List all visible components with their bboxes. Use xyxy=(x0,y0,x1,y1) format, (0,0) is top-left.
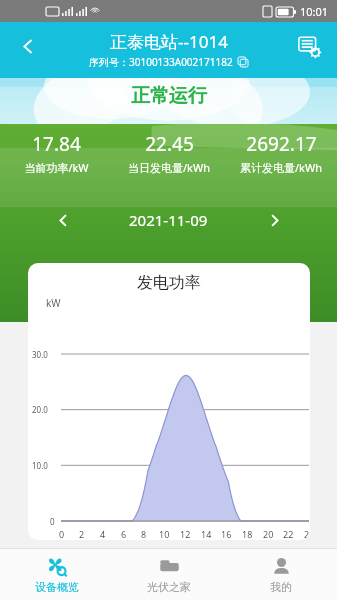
staticText: 0 xyxy=(59,528,65,540)
staticText: 序列号：30100133A002171182 xyxy=(89,55,233,69)
staticText: 8 xyxy=(141,528,147,540)
staticText: 2 xyxy=(79,528,85,540)
staticText: 12 xyxy=(180,528,191,540)
staticText: 2692.17 xyxy=(246,131,317,157)
staticText: 6 xyxy=(121,528,127,540)
staticText: 18 xyxy=(242,528,253,540)
button[interactable]: 光伏之家 xyxy=(113,549,225,600)
staticText: 22.45 xyxy=(145,131,194,157)
button[interactable]: Copy serial number xyxy=(237,56,249,68)
button[interactable]: 设备概览 xyxy=(0,549,113,600)
staticText: 当前功率/kW xyxy=(24,160,89,175)
staticText: 当日发电量/kWh xyxy=(128,160,210,175)
staticText: 光伏之家 xyxy=(147,580,191,594)
button[interactable]: Previous day xyxy=(48,205,78,235)
button[interactable]: 17.84 xyxy=(0,131,113,175)
button[interactable]: 22.45 xyxy=(113,131,225,175)
staticText: 0 xyxy=(50,516,55,527)
staticText: 累计发电量/kWh xyxy=(240,160,322,175)
staticText: 24 xyxy=(304,528,310,540)
staticText: 设备概览 xyxy=(35,580,79,594)
staticText: 2021-11-09 xyxy=(129,210,208,230)
staticText: 正泰电站--1014 xyxy=(110,30,228,53)
staticText: 16 xyxy=(221,528,232,540)
button[interactable]: 2692.17 xyxy=(225,131,337,175)
staticText: 10 xyxy=(159,528,170,540)
staticText: 20 xyxy=(263,528,274,540)
staticText: 22 xyxy=(283,528,294,540)
staticText: 20.0 xyxy=(32,404,48,415)
button[interactable]: Device settings xyxy=(289,26,329,66)
button[interactable]: 我的 xyxy=(225,549,337,600)
button[interactable]: Next day xyxy=(259,205,289,235)
button[interactable]: Back xyxy=(8,26,48,66)
staticText: 10:01 xyxy=(300,4,329,19)
staticText: 发电功率 xyxy=(137,273,201,293)
staticText: kW xyxy=(46,296,61,310)
staticText: 10.0 xyxy=(32,460,48,471)
staticText: 正常运行 xyxy=(131,84,207,108)
staticText: 我的 xyxy=(270,580,292,594)
staticText: 4 xyxy=(100,528,106,540)
staticText: 30.0 xyxy=(32,349,48,360)
staticText: 17.84 xyxy=(32,131,81,157)
staticText: 14 xyxy=(201,528,212,540)
button[interactable]: 发电功率 xyxy=(28,263,310,540)
